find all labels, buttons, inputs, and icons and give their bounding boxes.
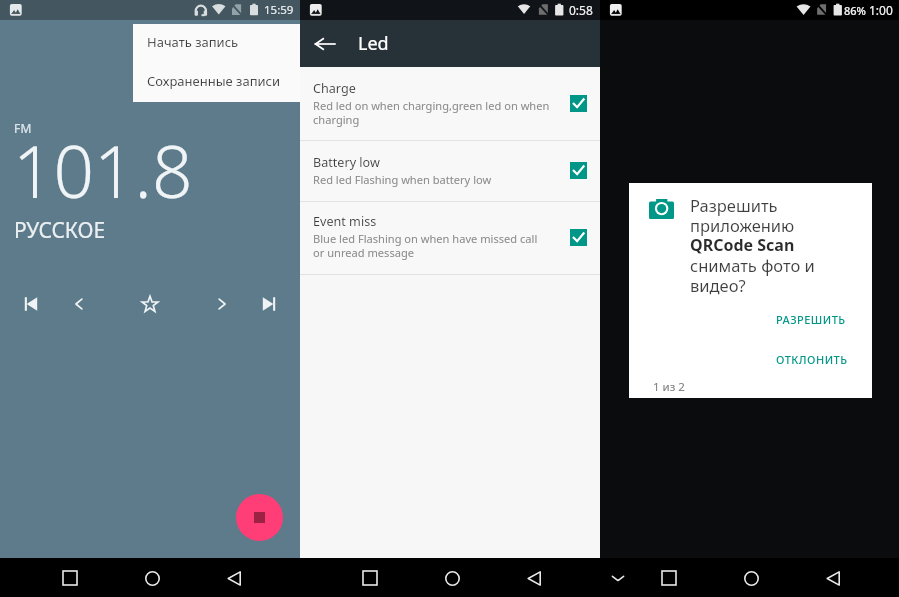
staticText: снимать фото и — [690, 254, 815, 276]
staticText: Сохраненные записи — [147, 72, 281, 90]
staticText: видео? — [690, 274, 746, 296]
button[interactable]: РАЗРЕШИТЬ — [771, 308, 851, 331]
staticText: Red led on when charging,green led on wh… — [313, 98, 557, 127]
staticText: 86% — [844, 3, 866, 18]
button[interactable]: Charge — [300, 67, 600, 140]
staticText: Charge — [313, 80, 356, 97]
staticText: Event miss — [313, 213, 377, 230]
button[interactable]: Начать запись — [133, 24, 300, 63]
staticText: 0:58 — [569, 2, 593, 18]
staticText: ОТКЛОНИТЬ — [776, 352, 848, 367]
button[interactable]: Home — [134, 560, 170, 596]
staticText: РУССКОЕ — [14, 216, 106, 245]
staticText: Начать запись — [147, 33, 239, 51]
staticText: Red led Flashing when battery low — [313, 172, 492, 187]
button[interactable]: Back — [516, 560, 552, 596]
staticText: 15:59 — [264, 2, 294, 18]
staticText: РАЗРЕШИТЬ — [776, 312, 846, 327]
staticText: 1:00 — [869, 2, 893, 18]
staticText: FM — [14, 120, 32, 136]
staticText: Разрешить — [690, 194, 778, 216]
button[interactable]: Stop recording — [236, 494, 283, 541]
button[interactable]: Favorite — [132, 286, 168, 322]
button[interactable]: Back — [815, 560, 851, 596]
button[interactable]: Hide — [602, 562, 634, 594]
button[interactable]: Seek down — [61, 286, 97, 322]
button[interactable]: Previous station — [13, 286, 49, 322]
staticText: Blue led Flashing on when have missed ca… — [313, 231, 544, 260]
button[interactable]: Seek up — [204, 286, 240, 322]
staticText: 1 из 2 — [653, 379, 685, 395]
button[interactable]: Back — [308, 27, 342, 61]
button[interactable]: Recents — [352, 560, 388, 596]
button[interactable]: Home — [733, 560, 769, 596]
staticText: QRCode Scan — [690, 234, 795, 256]
button[interactable]: ОТКЛОНИТЬ — [771, 348, 853, 371]
staticText: приложению — [690, 214, 795, 236]
button[interactable]: Recents — [651, 560, 687, 596]
button[interactable]: Recents — [52, 560, 88, 596]
button[interactable]: Event miss — [300, 202, 600, 274]
button[interactable]: Battery low — [300, 141, 600, 201]
button[interactable]: Сохраненные записи — [133, 63, 300, 102]
button[interactable]: Next station — [251, 286, 287, 322]
staticText: 101.8 — [13, 122, 193, 219]
staticText: Battery low — [313, 154, 380, 171]
button[interactable]: Home — [434, 560, 470, 596]
button[interactable]: Back — [216, 560, 252, 596]
staticText: Led — [358, 31, 389, 56]
